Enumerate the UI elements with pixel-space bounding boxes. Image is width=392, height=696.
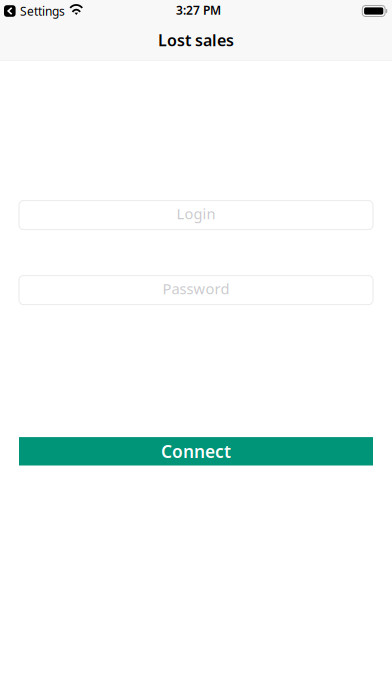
staticText: 3:27 PM xyxy=(176,2,221,18)
button[interactable]: Login xyxy=(19,201,373,230)
staticText: Lost sales xyxy=(158,29,234,51)
staticText: Settings xyxy=(20,3,65,19)
button[interactable]: Connect xyxy=(19,437,373,465)
staticText: Login xyxy=(176,204,215,223)
staticText: Connect xyxy=(161,440,231,463)
staticText: Password xyxy=(162,279,229,298)
button[interactable]: Back to Settings xyxy=(0,3,65,19)
button[interactable]: Password xyxy=(19,276,373,305)
